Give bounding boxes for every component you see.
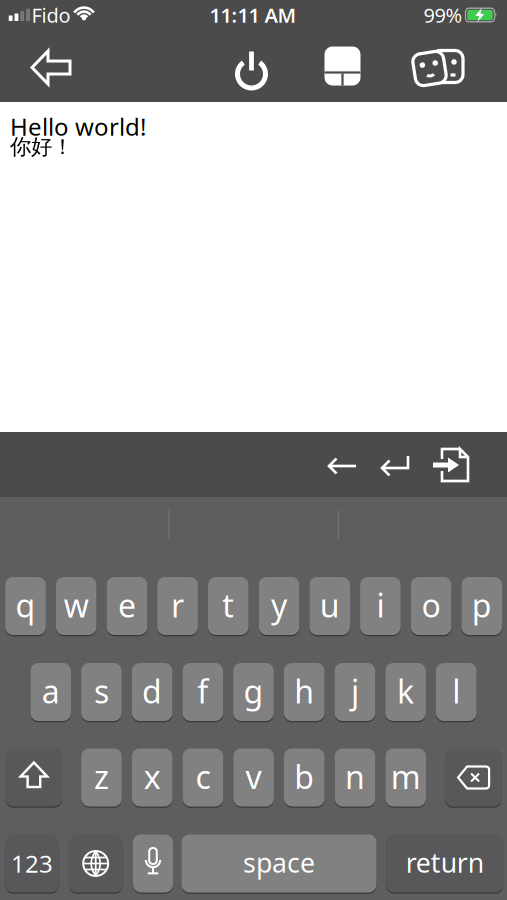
button[interactable]: p — [461, 576, 502, 636]
staticText: f — [197, 670, 208, 712]
staticText: 11:11 AM — [209, 2, 296, 28]
staticText: g — [243, 670, 263, 712]
button[interactable]: Numbers — [5, 833, 58, 893]
staticText: x — [144, 755, 161, 798]
button[interactable]: q — [5, 576, 46, 636]
staticText: q — [15, 584, 35, 626]
button[interactable]: b — [284, 747, 325, 807]
button[interactable]: Send text — [431, 443, 479, 489]
staticText: n — [345, 755, 365, 798]
staticText: u — [320, 584, 340, 626]
button[interactable]: g — [233, 662, 274, 722]
button[interactable]: Delete — [445, 747, 501, 807]
button[interactable]: Switch — [407, 41, 467, 93]
staticText: e — [118, 584, 136, 626]
button[interactable]: u — [309, 576, 350, 636]
staticText: k — [397, 670, 414, 712]
button[interactable]: n — [335, 747, 375, 807]
staticText: t — [222, 584, 234, 626]
button[interactable]: m — [385, 747, 426, 807]
button[interactable]: w — [56, 576, 96, 636]
button[interactable]: i — [360, 576, 401, 636]
staticText: Fido — [31, 2, 70, 28]
button[interactable]: x — [132, 747, 172, 807]
staticText: p — [472, 584, 492, 626]
button[interactable]: space — [181, 833, 376, 893]
button[interactable]: Back — [21, 41, 81, 93]
staticText: v — [246, 755, 262, 798]
button[interactable]: k — [385, 662, 426, 722]
button[interactable]: v — [233, 747, 274, 807]
staticText: l — [452, 670, 460, 712]
button[interactable]: o — [411, 576, 451, 636]
staticText: return — [406, 845, 484, 880]
button[interactable]: t — [208, 576, 249, 636]
staticText: space — [243, 845, 315, 880]
button[interactable]: Shift — [6, 747, 62, 807]
staticText: r — [171, 584, 184, 626]
button[interactable]: c — [183, 747, 223, 807]
staticText: z — [94, 755, 109, 798]
staticText: s — [94, 670, 109, 712]
button[interactable]: Dictate — [133, 833, 173, 893]
staticText: i — [376, 584, 384, 626]
staticText: 123 — [11, 848, 53, 879]
button[interactable]: Next keyboard — [69, 833, 122, 893]
button[interactable]: y — [259, 576, 299, 636]
staticText: d — [142, 670, 162, 712]
button[interactable]: s — [81, 662, 122, 722]
staticText: w — [64, 584, 89, 626]
staticText: y — [271, 584, 287, 626]
button[interactable]: e — [107, 576, 147, 636]
button[interactable]: r — [157, 576, 198, 636]
button[interactable]: l — [436, 662, 477, 722]
staticText: j — [351, 670, 359, 712]
staticText: m — [391, 755, 421, 798]
staticText: o — [422, 584, 441, 626]
button[interactable]: f — [182, 662, 223, 722]
button[interactable]: Power — [223, 45, 279, 97]
button[interactable]: return — [386, 833, 503, 893]
button[interactable]: a — [30, 662, 71, 722]
staticText: a — [42, 670, 60, 712]
button[interactable]: Trackpad — [314, 40, 370, 92]
staticText: 99% — [423, 2, 462, 28]
staticText: b — [294, 755, 314, 798]
button[interactable]: j — [335, 662, 375, 722]
button[interactable]: d — [132, 662, 172, 722]
staticText: h — [294, 670, 314, 712]
button[interactable]: h — [284, 662, 324, 722]
button[interactable]: Move cursor left — [320, 444, 364, 488]
button[interactable]: z — [81, 747, 122, 807]
button[interactable]: Return — [373, 444, 417, 488]
staticText: Hello world! — [10, 111, 146, 142]
staticText: 你好！ — [10, 134, 73, 160]
staticText: c — [195, 755, 210, 798]
